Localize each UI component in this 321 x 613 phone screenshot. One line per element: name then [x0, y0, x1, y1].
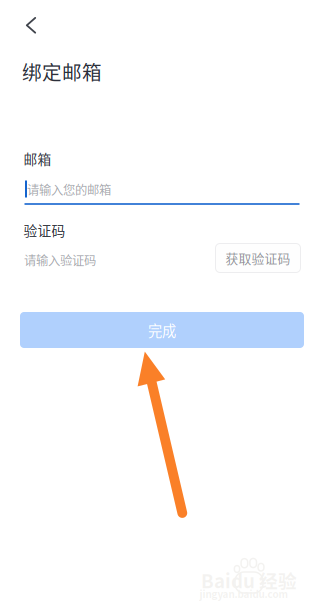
- staticText: 获取验证码: [225, 249, 290, 267]
- staticText: 邮箱: [23, 148, 51, 168]
- button[interactable]: 完成: [20, 312, 304, 348]
- button[interactable]: Back: [0, 0, 46, 46]
- staticText: 验证码: [23, 220, 65, 240]
- staticText: Baidu 经验: [201, 566, 297, 593]
- staticText: 请输入您的邮箱: [27, 180, 111, 198]
- staticText: 请输入验证码: [24, 251, 96, 269]
- staticText: jingyan.baidu.com: [199, 586, 288, 601]
- button[interactable]: 获取验证码: [215, 243, 300, 272]
- staticText: 完成: [148, 320, 176, 340]
- staticText: 绑定邮箱: [22, 57, 102, 85]
